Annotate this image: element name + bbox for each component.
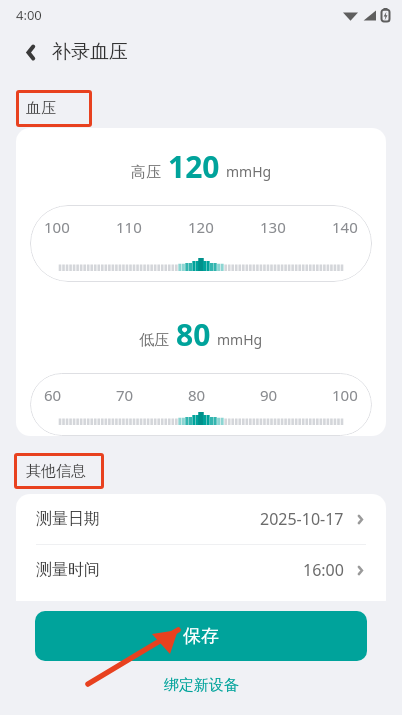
- staticText: 140: [332, 217, 358, 237]
- staticText: 低压: [139, 331, 169, 350]
- button[interactable]: 绑定新设备: [0, 676, 402, 695]
- staticText: 90: [260, 385, 278, 405]
- staticText: 120: [168, 146, 220, 187]
- staticText: 100: [332, 385, 358, 405]
- staticText: 70: [116, 385, 134, 405]
- button[interactable]: 测量时间: [16, 545, 386, 595]
- staticText: 血压: [26, 99, 56, 118]
- staticText: 110: [116, 217, 142, 237]
- button[interactable]: Back: [12, 34, 48, 70]
- staticText: 保存: [183, 625, 219, 648]
- button[interactable]: 保存: [35, 611, 367, 661]
- staticText: 测量日期: [36, 509, 100, 529]
- staticText: 60: [44, 385, 62, 405]
- staticText: 2025-10-17: [260, 508, 344, 530]
- staticText: 130: [260, 217, 286, 237]
- staticText: 高压: [131, 163, 161, 182]
- staticText: mmHg: [217, 330, 263, 349]
- staticText: 100: [44, 217, 70, 237]
- staticText: 测量时间: [36, 560, 100, 580]
- staticText: 80: [176, 314, 211, 355]
- staticText: 其他信息: [26, 462, 86, 481]
- staticText: mmHg: [226, 162, 272, 181]
- staticText: 16:00: [303, 559, 344, 581]
- staticText: 80: [188, 385, 206, 405]
- staticText: 补录血压: [52, 40, 128, 64]
- staticText: 120: [188, 217, 214, 237]
- button[interactable]: 测量日期: [16, 494, 386, 544]
- staticText: 4:00: [16, 6, 42, 24]
- staticText: 绑定新设备: [164, 676, 239, 695]
